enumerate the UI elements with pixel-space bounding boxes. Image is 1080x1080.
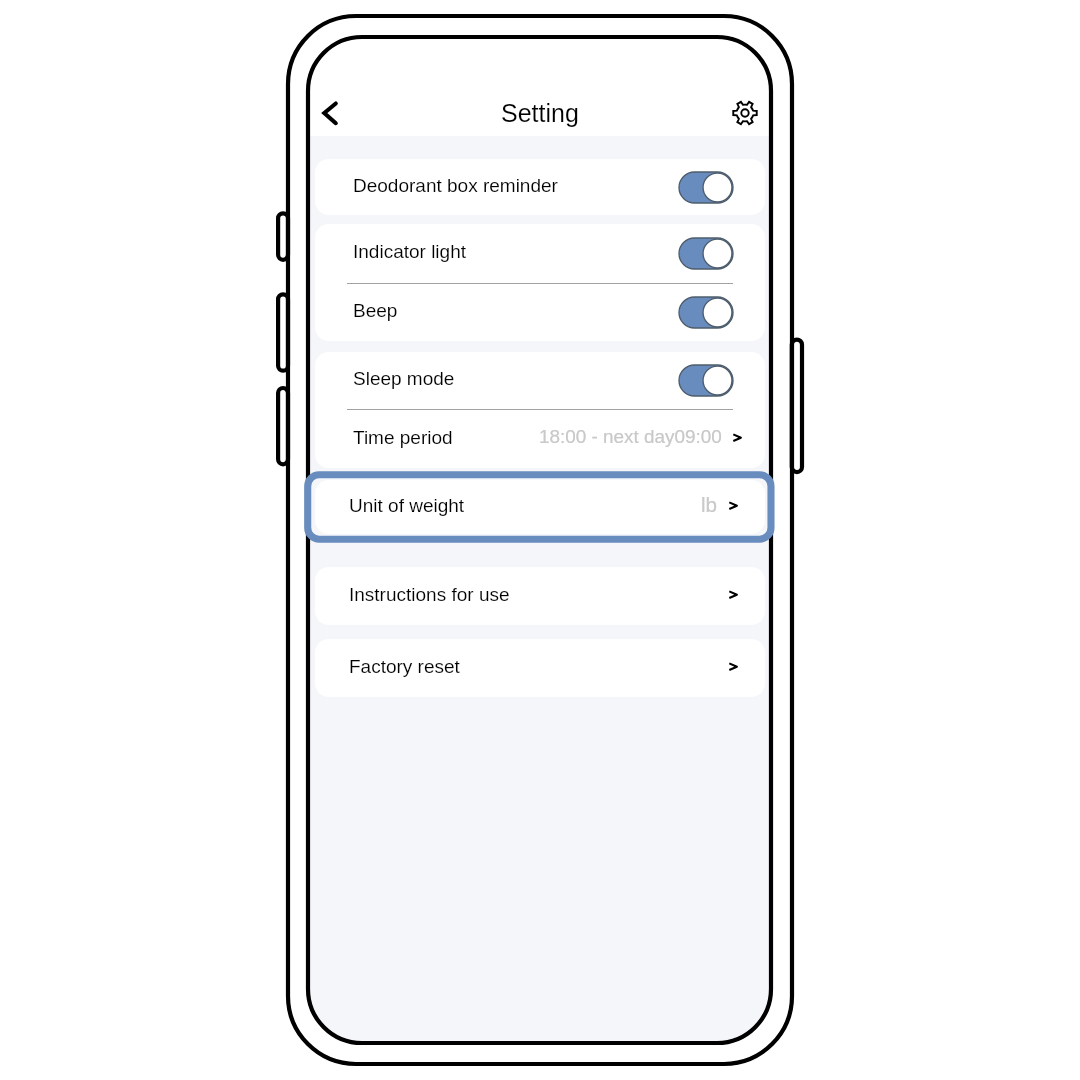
button[interactable]: Sleep mode — [315, 352, 765, 409]
button[interactable]: Factory reset — [315, 639, 765, 697]
button[interactable]: Indicator light — [315, 224, 765, 283]
button[interactable]: Instructions for use — [315, 567, 765, 625]
staticText: lb — [701, 493, 718, 516]
staticText: Factory reset — [349, 656, 460, 677]
button[interactable]: Settings — [716, 84, 771, 142]
staticText: Setting — [501, 99, 579, 127]
button[interactable]: Back — [308, 72, 364, 128]
button[interactable]: Indicator light, on — [679, 238, 733, 269]
button[interactable]: Deodorant box reminder — [315, 159, 765, 215]
button[interactable]: Sleep mode, on — [679, 365, 733, 396]
button[interactable]: Beep — [315, 284, 765, 341]
button[interactable]: Beep, on — [679, 297, 733, 328]
staticText: Indicator light — [353, 241, 467, 262]
button[interactable]: Deodorant box reminder, on — [679, 172, 733, 203]
staticText: 18:00 - next day09:00 — [539, 426, 722, 447]
staticText: Beep — [353, 300, 398, 321]
staticText: Unit of weight — [349, 495, 465, 516]
staticText: Time period — [353, 427, 453, 448]
staticText: Instructions for use — [349, 584, 510, 605]
staticText: Sleep mode — [353, 368, 455, 389]
button[interactable]: Time period — [315, 410, 765, 468]
staticText: Deodorant box reminder — [353, 175, 558, 196]
button[interactable]: Unit of weight — [315, 480, 765, 534]
